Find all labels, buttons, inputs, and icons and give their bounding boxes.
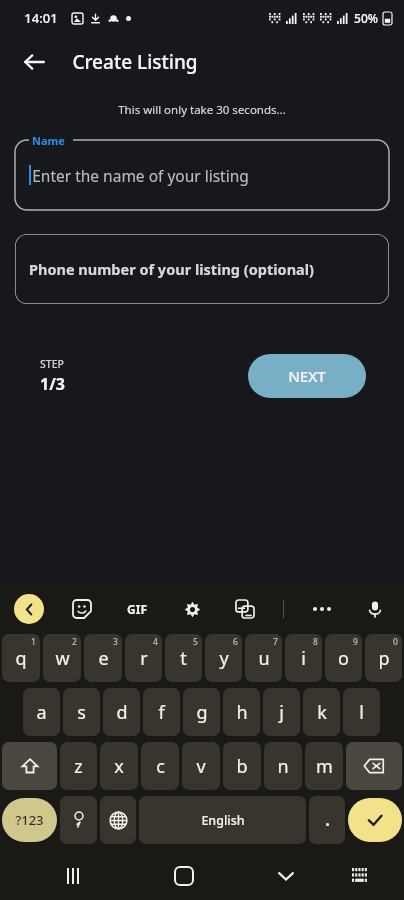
staticText: This will only take 30 seconds... <box>118 102 286 118</box>
staticText: 9 <box>353 636 358 648</box>
button[interactable]: n <box>264 742 302 790</box>
staticText: 8 <box>313 636 318 648</box>
button[interactable]: Back <box>14 594 44 624</box>
button[interactable]: c <box>141 742 179 790</box>
staticText: . <box>325 809 330 831</box>
button[interactable]: g <box>183 688 220 736</box>
button[interactable]: More options <box>307 594 337 624</box>
button[interactable]: r <box>125 634 162 682</box>
button[interactable]: x <box>100 742 138 790</box>
button[interactable]: p <box>365 634 402 682</box>
button[interactable]: ?123 <box>2 798 57 842</box>
staticText: 5 <box>193 636 198 648</box>
button[interactable]: Recent apps <box>52 855 94 897</box>
staticText: v <box>196 754 206 779</box>
staticText: ?123 <box>15 811 44 829</box>
button[interactable]: Settings <box>177 594 207 624</box>
staticText: 6 <box>233 636 238 648</box>
staticText: Phone number of your listing (optional) <box>29 259 314 279</box>
staticText: l <box>359 700 364 725</box>
button[interactable]: m <box>305 742 343 790</box>
staticText: e <box>98 646 109 671</box>
button[interactable]: k <box>303 688 340 736</box>
staticText: 2 <box>72 636 77 648</box>
staticText: 1 <box>31 636 36 648</box>
staticText: 7 <box>273 636 278 648</box>
staticText: c <box>156 754 165 779</box>
button[interactable]: t <box>165 634 202 682</box>
button[interactable]: u <box>245 634 282 682</box>
button[interactable]: h <box>223 688 260 736</box>
staticText: f <box>158 700 165 725</box>
button[interactable]: q <box>2 634 40 682</box>
staticText: q <box>15 646 27 671</box>
button[interactable]: Change language <box>100 796 136 844</box>
staticText: t <box>180 646 187 671</box>
button[interactable]: b <box>223 742 261 790</box>
staticText: Name <box>32 133 65 148</box>
staticText: STEP <box>40 357 64 371</box>
staticText: u <box>258 646 270 671</box>
staticText: 4 <box>153 636 158 648</box>
staticText: n <box>277 754 289 779</box>
staticText: x <box>114 754 124 779</box>
button[interactable]: Translate <box>230 594 260 624</box>
staticText: s <box>77 700 86 725</box>
button[interactable]: . <box>309 796 345 844</box>
staticText: z <box>74 754 83 779</box>
staticText: GIF <box>127 601 147 617</box>
staticText: Enter the name of your listing <box>32 165 249 186</box>
button[interactable]: Enter <box>348 798 402 842</box>
staticText: r <box>140 646 148 671</box>
staticText: 14:01 <box>24 9 58 27</box>
button[interactable]: v <box>182 742 220 790</box>
button[interactable]: Voice input <box>360 594 390 624</box>
staticText: 50% <box>354 10 378 26</box>
staticText: p <box>378 646 390 671</box>
button[interactable]: Switch keyboard <box>339 855 381 897</box>
button[interactable]: Shift <box>2 742 57 790</box>
button[interactable]: Home <box>163 855 205 897</box>
staticText: NEXT <box>288 366 326 386</box>
button[interactable]: Hide keyboard <box>265 855 307 897</box>
button[interactable]: s <box>63 688 100 736</box>
staticText: English <box>201 812 245 829</box>
staticText: k <box>317 700 327 725</box>
button[interactable]: Phone number of your listing (optional) <box>15 234 389 304</box>
button[interactable]: o <box>325 634 362 682</box>
staticText: a <box>36 700 47 725</box>
button[interactable]: z <box>60 742 97 790</box>
staticText: o <box>338 646 349 671</box>
button[interactable]: Back <box>12 40 56 84</box>
staticText: w <box>55 646 70 671</box>
button[interactable]: j <box>263 688 300 736</box>
button[interactable]: e <box>84 634 122 682</box>
button[interactable]: GIF <box>120 592 154 626</box>
staticText: j <box>279 700 284 725</box>
staticText: m <box>316 754 333 779</box>
staticText: 1/3 <box>40 373 65 395</box>
staticText: y <box>219 646 229 671</box>
button[interactable]: y <box>205 634 242 682</box>
button[interactable]: i <box>285 634 322 682</box>
button[interactable]: NEXT <box>248 354 366 398</box>
button[interactable]: a <box>23 688 60 736</box>
staticText: 0 <box>393 636 398 648</box>
staticText: d <box>116 700 128 725</box>
button[interactable]: English <box>139 796 306 844</box>
staticText: h <box>236 700 248 725</box>
staticText: g <box>196 700 208 725</box>
staticText: Create Listing <box>72 49 198 75</box>
button[interactable]: Stickers <box>67 594 97 624</box>
button[interactable]: Backspace <box>346 742 402 790</box>
staticText: i <box>301 646 306 671</box>
button[interactable]: w <box>43 634 81 682</box>
button[interactable]: l <box>343 688 380 736</box>
staticText: 3 <box>113 636 118 648</box>
button[interactable]: d <box>103 688 140 736</box>
staticText: b <box>236 754 248 779</box>
button[interactable]: f <box>143 688 180 736</box>
button[interactable]: Emoji <box>60 796 97 844</box>
